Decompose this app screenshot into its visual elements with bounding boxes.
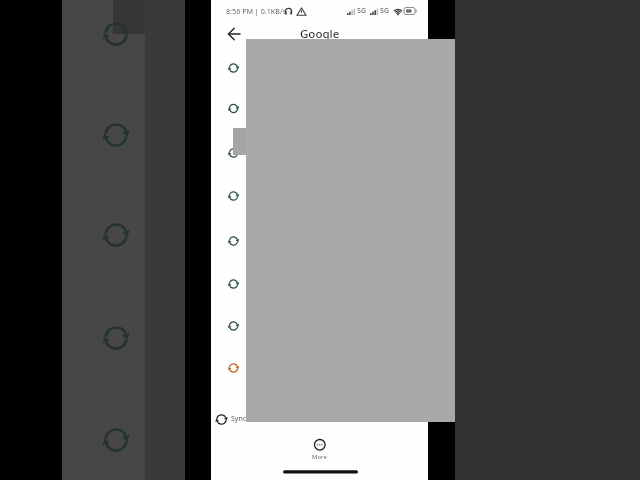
button[interactable] [211,132,428,174]
button[interactable] [211,220,428,262]
button[interactable] [211,408,428,431]
staticText: More [312,453,327,461]
staticText: 5G [357,6,367,16]
button[interactable] [211,305,428,347]
button[interactable] [222,24,246,44]
button[interactable] [211,263,428,305]
button[interactable] [211,175,428,217]
button[interactable] [302,434,338,461]
staticText: 8:56 PM | 0.1KB/s [226,6,287,16]
button[interactable] [211,87,428,129]
button[interactable] [211,347,428,389]
staticText: 5G [380,6,390,16]
staticText: Sync [231,414,247,424]
staticText: Google [300,26,340,41]
button[interactable] [211,47,428,89]
